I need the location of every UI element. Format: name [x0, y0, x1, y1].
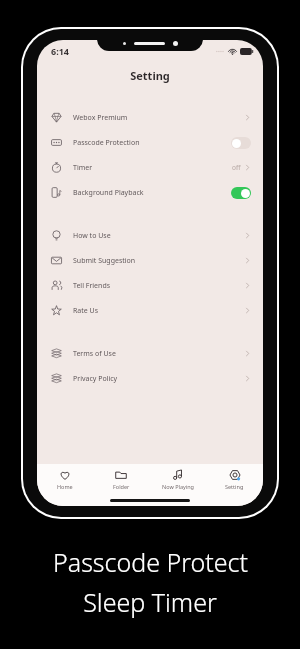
button[interactable]: Now Playing [149, 464, 206, 494]
staticText: How to Use [73, 231, 244, 241]
staticText: Timer [73, 163, 232, 173]
button[interactable]: Background Playback [37, 180, 263, 205]
staticText: Setting [37, 68, 263, 83]
staticText: Rate Us [73, 306, 244, 316]
button[interactable]: Tell Friends [37, 273, 263, 298]
staticText: Terms of Use [73, 349, 244, 359]
staticText: 6:14 [51, 45, 69, 57]
staticText: Tell Friends [73, 281, 244, 291]
staticText: Passcode Protect [53, 545, 248, 579]
staticText: Sleep Timer [83, 585, 217, 619]
button[interactable]: Toggle on [231, 187, 251, 199]
button[interactable]: Setting [206, 464, 263, 494]
staticText: off [232, 163, 241, 172]
button[interactable]: Timer [37, 155, 263, 180]
staticText: Background Playback [73, 188, 231, 198]
button[interactable]: Toggle off [231, 137, 251, 149]
staticText: Folder [113, 483, 130, 490]
staticText: Submit Suggestion [73, 256, 244, 266]
staticText: Webox Premium [73, 113, 244, 123]
button[interactable]: Rate Us [37, 298, 263, 323]
button[interactable]: Webox Premium [37, 105, 263, 130]
staticText: Setting [225, 483, 244, 490]
button[interactable]: Home [37, 464, 93, 494]
button[interactable]: Privacy Policy [37, 366, 263, 391]
button[interactable]: Submit Suggestion [37, 248, 263, 273]
button[interactable]: How to Use [37, 223, 263, 248]
staticText: Passcode Protection [73, 138, 231, 148]
button[interactable]: Terms of Use [37, 341, 263, 366]
staticText: Home [57, 483, 73, 490]
staticText: Privacy Policy [73, 374, 244, 384]
button[interactable]: Passcode Protection [37, 130, 263, 155]
button[interactable]: Folder [93, 464, 149, 494]
staticText: Now Playing [162, 483, 194, 490]
